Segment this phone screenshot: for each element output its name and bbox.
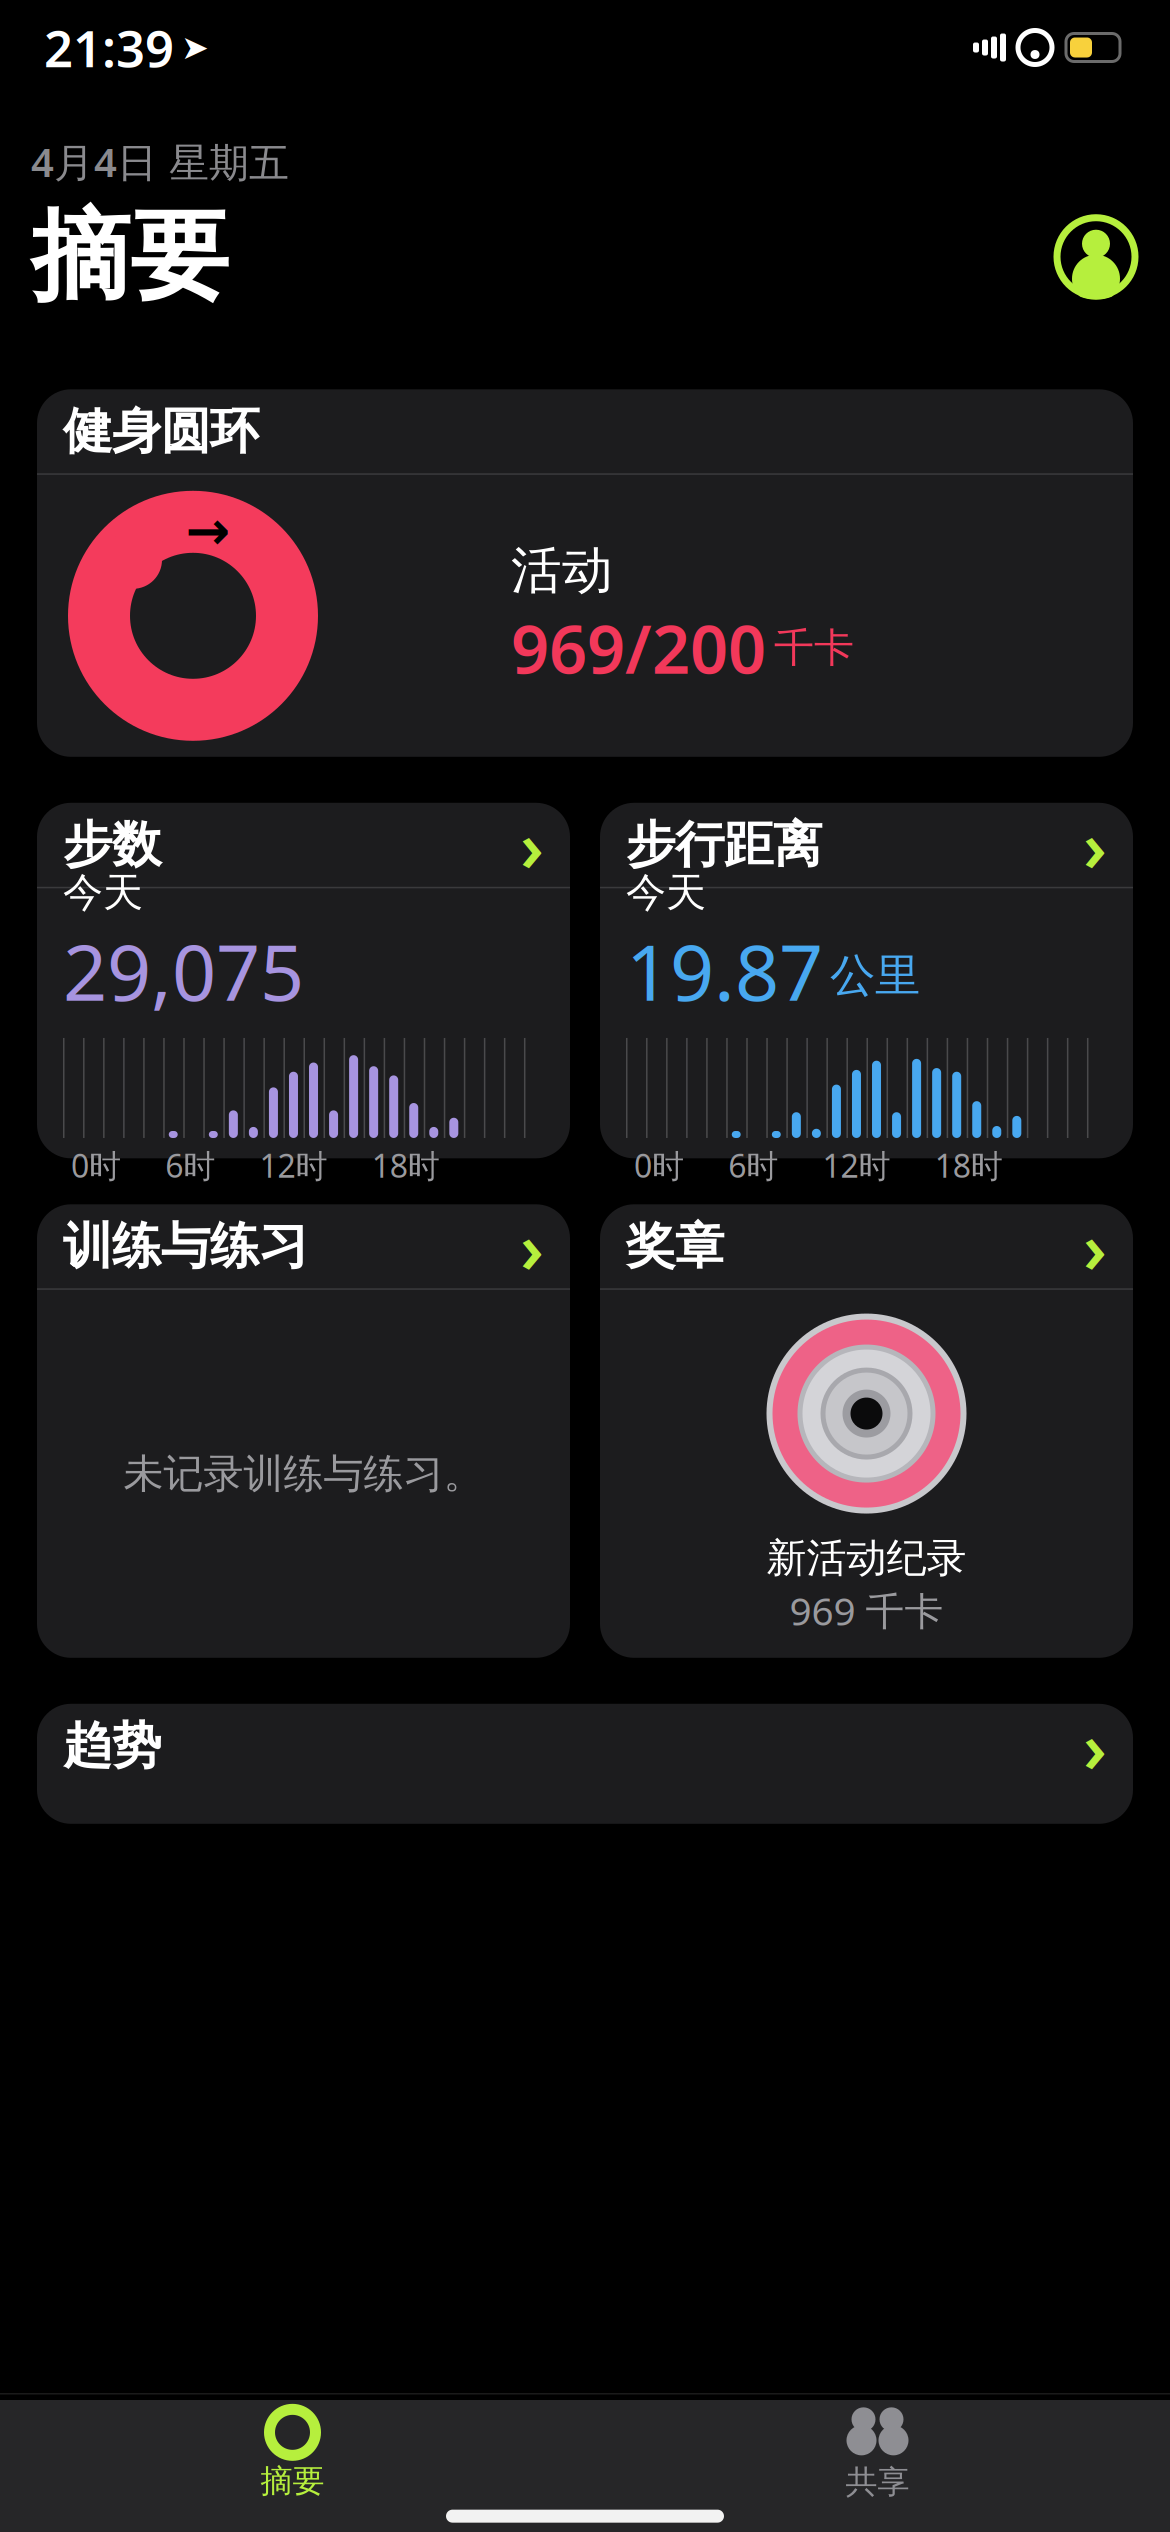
button[interactable]: 共享 <box>585 2394 1170 2502</box>
button[interactable]: 个人资料 <box>1053 214 1139 300</box>
staticText: 今天 <box>63 868 143 917</box>
staticText: 新活动纪录 <box>766 1534 966 1583</box>
staticText: 29,075 <box>63 919 304 1022</box>
staticText: › <box>1083 1700 1107 1792</box>
button[interactable]: 步行距离 <box>600 803 1133 1158</box>
staticText: › <box>1083 799 1107 891</box>
staticText: 6时 <box>728 1144 778 1186</box>
staticText: 12时 <box>822 1144 890 1186</box>
staticText: 4月4日 星期五 <box>31 135 289 188</box>
button[interactable]: 奖章 <box>600 1204 1133 1658</box>
staticText: 6时 <box>165 1144 215 1186</box>
staticText: › <box>1083 1200 1107 1292</box>
staticText: 今天 <box>626 868 706 917</box>
staticText: ➤ <box>181 29 209 66</box>
staticText: 共享 <box>845 2462 909 2502</box>
staticText: 活动 <box>511 539 613 602</box>
staticText: 12时 <box>259 1144 327 1186</box>
button[interactable]: 趋势 <box>37 1704 1133 1824</box>
staticText: 0时 <box>71 1144 121 1186</box>
button[interactable]: 训练与练习 <box>37 1204 570 1658</box>
staticText: 公里 <box>830 948 920 1003</box>
staticText: 奖章 <box>626 1216 724 1277</box>
staticText: 18时 <box>372 1144 440 1186</box>
staticText: 摘要 <box>260 2461 324 2501</box>
button[interactable]: 步数 <box>37 803 570 1158</box>
staticText: 健身圆环 <box>63 401 259 462</box>
staticText: 千卡 <box>774 623 854 672</box>
staticText: › <box>520 799 544 891</box>
staticText: 0时 <box>634 1144 684 1186</box>
staticText: 19.87 <box>626 919 823 1022</box>
staticText: 趋势 <box>63 1715 161 1776</box>
staticText: 未记录训练与练习。 <box>123 1449 483 1498</box>
staticText: › <box>520 1200 544 1292</box>
staticText: 18时 <box>935 1144 1003 1186</box>
staticText: → <box>185 500 230 561</box>
button[interactable]: 摘要 <box>0 2395 585 2501</box>
staticText: 摘要 <box>31 196 229 317</box>
staticText: 步行距离 <box>626 814 822 875</box>
staticText: 969/200 <box>511 604 766 692</box>
staticText: 训练与练习 <box>63 1216 308 1277</box>
staticText: 步数 <box>63 814 161 875</box>
staticText: 21:39 <box>44 14 174 81</box>
button[interactable]: 健身圆环 <box>37 389 1133 757</box>
staticText: 969 千卡 <box>789 1585 943 1636</box>
